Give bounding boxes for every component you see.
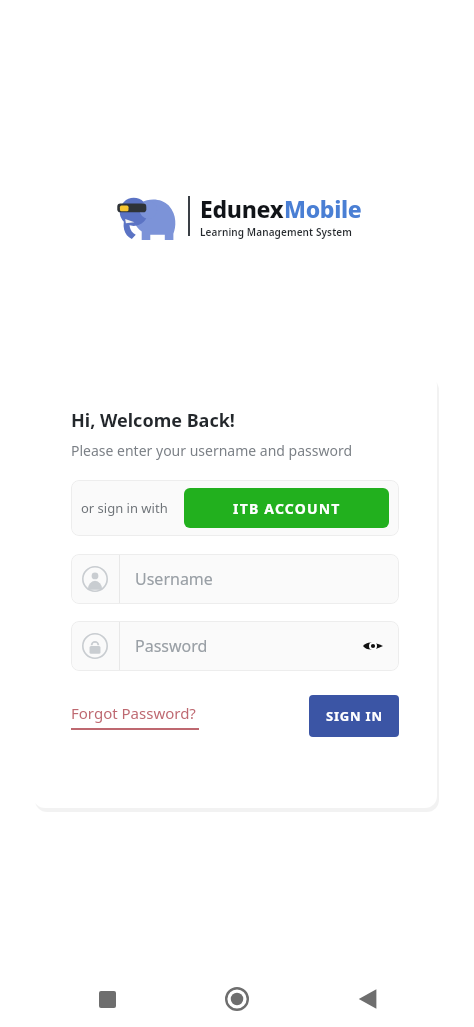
button[interactable]: Show password	[351, 624, 395, 668]
button[interactable]: Recent apps	[83, 975, 131, 1023]
staticText: ITB ACCOUNT	[233, 499, 341, 518]
staticText: Hi, Welcome Back!	[71, 408, 235, 433]
staticText: or sign in with	[81, 499, 168, 517]
button[interactable]: Password	[71, 621, 399, 671]
staticText: Forgot Password?	[71, 703, 196, 723]
button[interactable]: Back	[344, 975, 392, 1023]
staticText: Edunex	[200, 193, 284, 224]
button[interactable]: ITB ACCOUNT	[184, 488, 389, 528]
staticText: Learning Management System	[200, 225, 352, 239]
staticText: SIGN IN	[326, 707, 383, 725]
button[interactable]: Forgot Password?	[71, 701, 199, 732]
staticText: Please enter your username and password	[71, 441, 353, 460]
staticText: Mobile	[284, 193, 362, 224]
staticText: Password	[135, 635, 351, 657]
staticText: Username	[135, 568, 387, 590]
button[interactable]: Home	[213, 975, 261, 1023]
button[interactable]: SIGN IN	[309, 695, 399, 737]
button[interactable]: Username	[71, 554, 399, 604]
